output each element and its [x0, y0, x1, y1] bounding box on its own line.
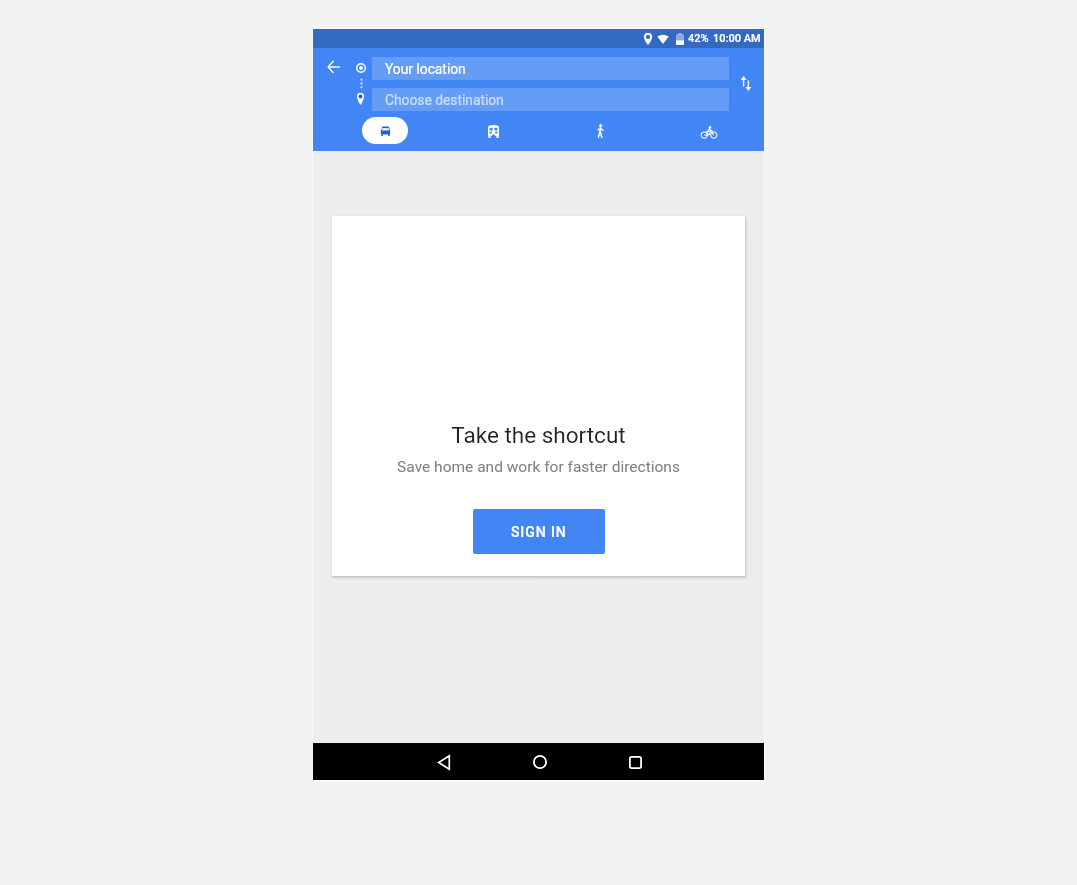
button[interactable]: Back [321, 55, 345, 79]
button[interactable]: SIGN IN [473, 509, 605, 554]
staticText: Choose destination [385, 92, 504, 108]
staticText: Save home and work for faster directions [332, 458, 745, 476]
button[interactable]: Swap origin and destination [734, 70, 757, 97]
button[interactable]: Choose destination [372, 88, 729, 111]
button[interactable]: Your location [372, 57, 729, 80]
button[interactable]: Cycling [695, 118, 723, 146]
button[interactable]: Driving [362, 117, 408, 144]
button[interactable]: Walking [586, 117, 614, 145]
button[interactable]: Recent apps [617, 744, 653, 780]
staticText: SIGN IN [511, 524, 567, 540]
staticText: Your location [385, 61, 466, 77]
button[interactable]: Transit [479, 117, 507, 145]
button[interactable]: Home [522, 744, 558, 780]
staticText: 42% [688, 32, 709, 45]
staticText: 10:00 AM [713, 32, 761, 45]
button[interactable]: Back [426, 744, 462, 780]
staticText: Take the shortcut [332, 422, 745, 448]
